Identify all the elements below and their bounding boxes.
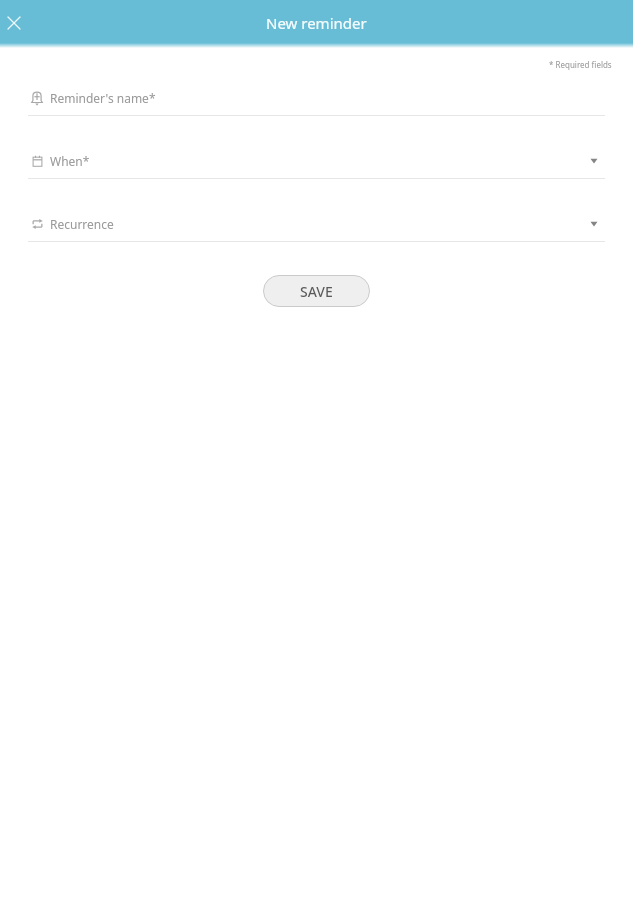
button[interactable]: Recurrence [0,179,633,242]
button[interactable]: Reminder's name* [0,53,633,116]
staticText: SAVE [300,282,333,301]
staticText: When* [50,153,90,169]
staticText: Recurrence [50,216,114,232]
button[interactable]: When* [0,116,633,179]
staticText: New reminder [266,13,367,33]
button[interactable]: SAVE [263,275,370,307]
staticText: Reminder's name* [50,90,156,106]
staticText: * Required fields [549,59,612,70]
button[interactable]: Close [0,5,32,41]
